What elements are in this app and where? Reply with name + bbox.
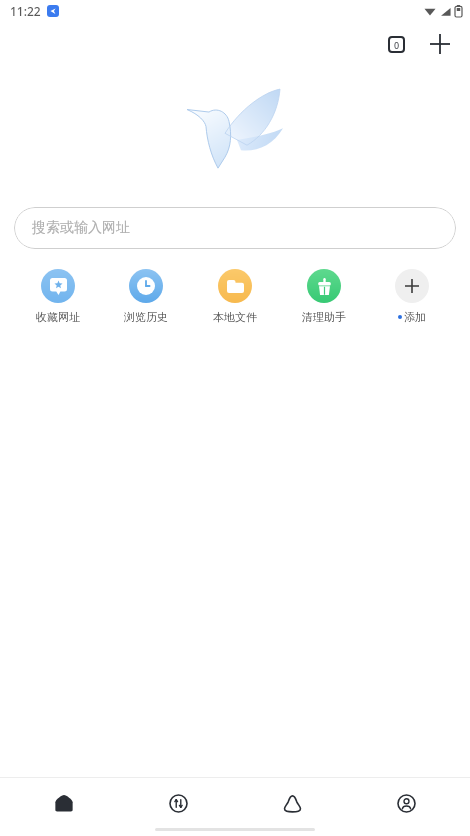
button[interactable]: Home — [14, 778, 114, 828]
button[interactable]: Tabs, 0 open — [378, 26, 414, 62]
staticText: 搜索或输入网址 — [32, 219, 130, 237]
button[interactable]: 清理助手 — [285, 267, 363, 326]
staticText: 11:22 — [10, 3, 41, 19]
button[interactable]: 添加 — [373, 267, 451, 326]
button[interactable]: 搜索或输入网址 — [14, 207, 456, 249]
button[interactable]: 浏览历史 — [107, 267, 185, 326]
button[interactable]: 本地文件 — [196, 267, 274, 326]
staticText: 清理助手 — [302, 310, 346, 324]
button[interactable]: Profile — [356, 778, 456, 828]
staticText: 0 — [394, 39, 400, 51]
staticText: 添加 — [404, 310, 426, 324]
staticText: 本地文件 — [213, 310, 257, 324]
button[interactable]: New tab — [422, 26, 458, 62]
staticText: 浏览历史 — [124, 310, 168, 324]
button[interactable]: 收藏网址 — [19, 267, 97, 326]
staticText: 收藏网址 — [36, 310, 80, 324]
button[interactable]: Cloud — [242, 778, 342, 828]
button[interactable]: Downloads — [128, 778, 228, 828]
